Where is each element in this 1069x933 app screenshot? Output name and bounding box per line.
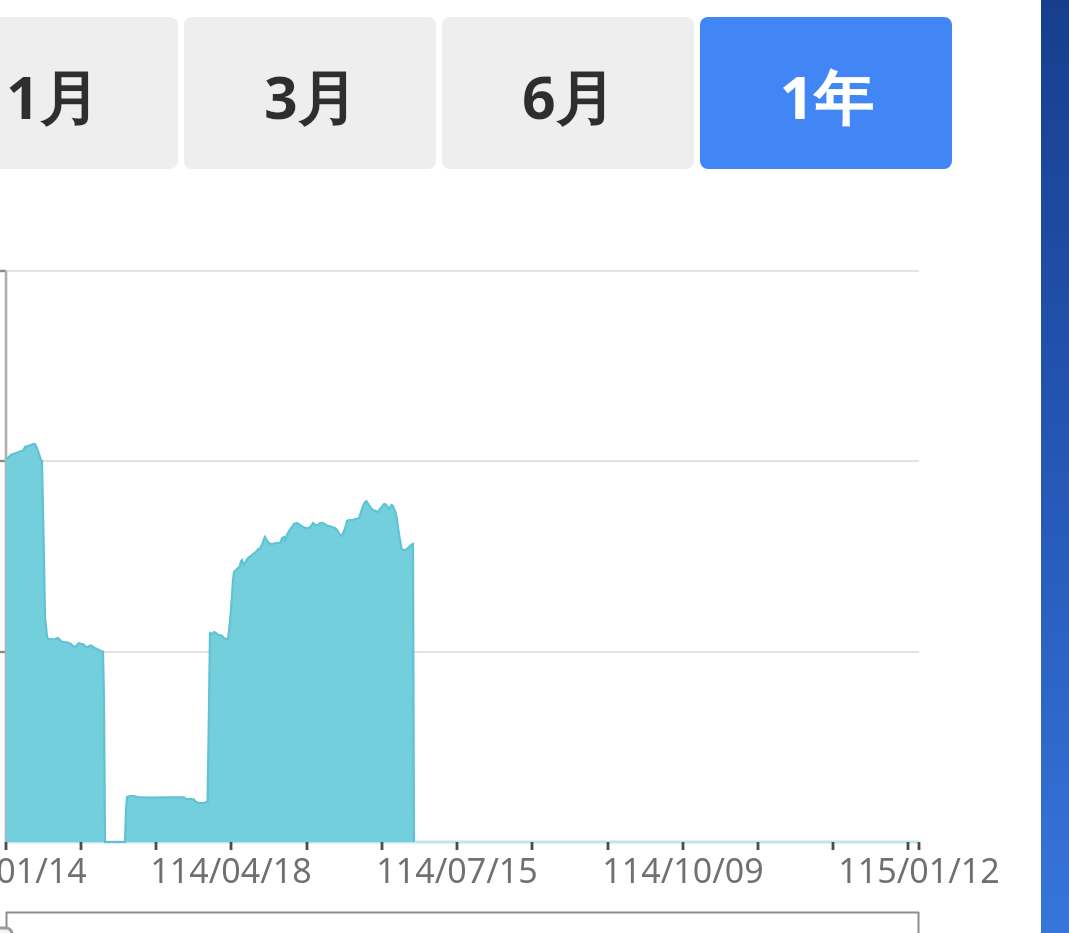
staticText: 1月 bbox=[6, 56, 99, 137]
button[interactable]: 3月 bbox=[184, 17, 436, 169]
other: Price history chart bbox=[0, 0, 1069, 933]
button[interactable]: 1月 bbox=[0, 17, 178, 169]
staticText: 114/10/09 bbox=[563, 847, 803, 893]
staticText: 6月 bbox=[522, 56, 615, 137]
button[interactable]: Details card bbox=[6, 912, 919, 933]
button[interactable]: 1年 bbox=[700, 17, 952, 169]
button[interactable]: 6月 bbox=[442, 17, 694, 169]
staticText: 114/07/15 bbox=[337, 847, 577, 893]
staticText: 1年 bbox=[780, 56, 873, 137]
staticText: 115/01/12 bbox=[799, 847, 1039, 893]
staticText: 114/04/18 bbox=[111, 847, 351, 893]
staticText: 3月 bbox=[264, 56, 357, 137]
staticText: 114/01/14 bbox=[0, 847, 126, 893]
